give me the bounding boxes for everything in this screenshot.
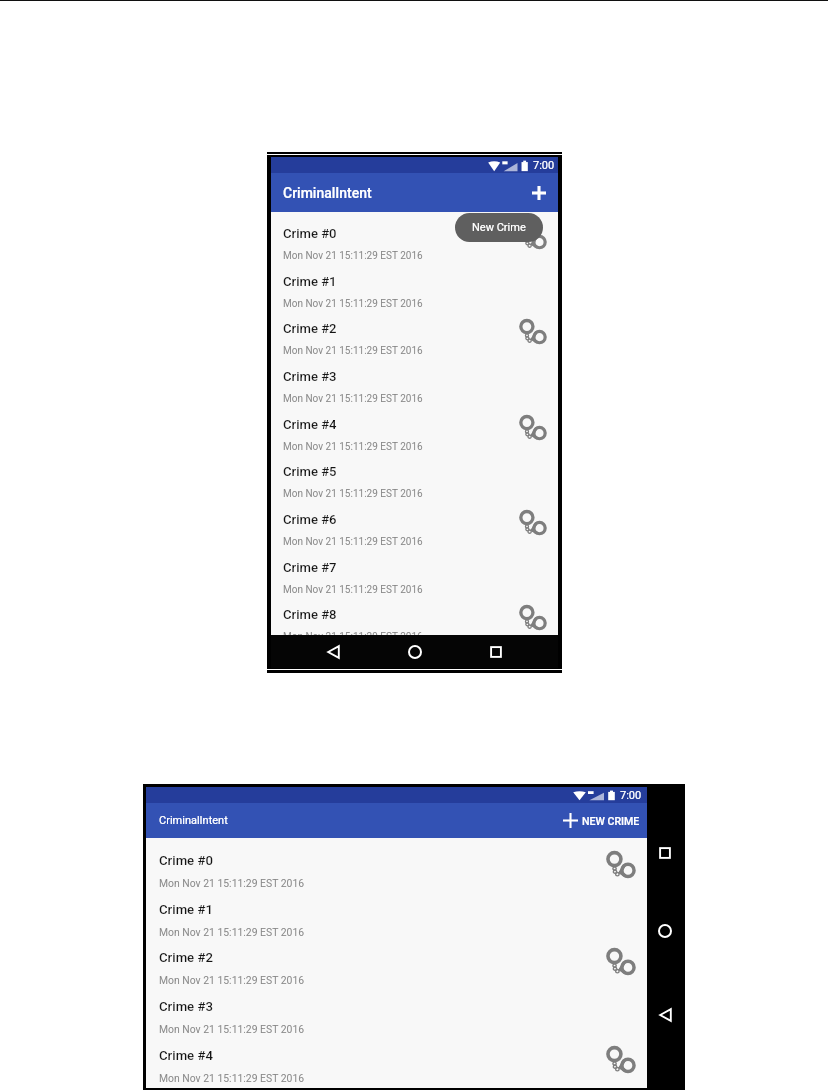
button[interactable]: Home xyxy=(652,918,678,944)
button[interactable]: Crime #2 xyxy=(146,950,648,992)
staticText: Mon Nov 21 15:11:29 EST 2016 xyxy=(159,926,305,938)
staticText: Crime #0 xyxy=(159,853,213,868)
staticText: Mon Nov 21 15:11:29 EST 2016 xyxy=(159,974,305,986)
staticText: Mon Nov 21 15:11:29 EST 2016 xyxy=(283,584,423,596)
staticText: Crime #3 xyxy=(159,999,213,1014)
button[interactable]: Crime #3 xyxy=(271,369,558,410)
staticText: CriminalIntent xyxy=(159,814,228,827)
button[interactable]: Crime #0 xyxy=(271,226,558,267)
button[interactable]: Crime #6 xyxy=(271,512,558,553)
button[interactable]: Crime #2 xyxy=(271,321,558,362)
staticText: Crime #5 xyxy=(283,464,337,479)
button[interactable]: Recent apps xyxy=(652,840,678,866)
button[interactable]: New Crime xyxy=(525,179,553,207)
button[interactable]: Crime #1 xyxy=(146,902,648,944)
button[interactable]: Crime #1 xyxy=(271,274,558,315)
staticText: 7:00 xyxy=(533,159,555,172)
button[interactable]: Back xyxy=(320,639,346,665)
button[interactable]: Crime #3 xyxy=(146,999,648,1041)
staticText: Crime #2 xyxy=(159,950,213,965)
staticText: Crime #0 xyxy=(283,226,337,241)
button[interactable]: Back xyxy=(652,1002,678,1028)
staticText: Crime #8 xyxy=(283,607,337,622)
staticText: Crime #2 xyxy=(283,321,337,336)
staticText: Mon Nov 21 15:11:29 EST 2016 xyxy=(159,877,305,889)
button[interactable]: Crime #4 xyxy=(271,417,558,458)
staticText: Mon Nov 21 15:11:29 EST 2016 xyxy=(159,1072,305,1084)
staticText: Crime #1 xyxy=(283,274,337,289)
staticText: Mon Nov 21 15:11:29 EST 2016 xyxy=(283,250,423,262)
staticText: CriminalIntent xyxy=(283,185,372,201)
staticText: Crime #7 xyxy=(283,560,337,575)
button[interactable]: Crime #8 xyxy=(271,607,558,648)
staticText: Crime #4 xyxy=(283,417,337,432)
button[interactable]: Recent apps xyxy=(483,639,509,665)
staticText: Crime #4 xyxy=(159,1048,213,1063)
staticText: Crime #6 xyxy=(283,512,337,527)
staticText: Crime #1 xyxy=(159,902,213,917)
button[interactable]: New Crime xyxy=(561,809,642,832)
staticText: Crime #3 xyxy=(283,369,337,384)
staticText: Mon Nov 21 15:11:29 EST 2016 xyxy=(283,441,423,453)
button[interactable]: Crime #5 xyxy=(271,464,558,505)
button[interactable]: Crime #7 xyxy=(271,560,558,601)
staticText: Mon Nov 21 15:11:29 EST 2016 xyxy=(283,488,423,500)
button[interactable]: Crime #0 xyxy=(146,853,648,895)
button[interactable]: Crime #4 xyxy=(146,1048,648,1090)
staticText: Mon Nov 21 15:11:29 EST 2016 xyxy=(159,1023,305,1035)
staticText: New Crime xyxy=(472,221,526,234)
staticText: Mon Nov 21 15:11:29 EST 2016 xyxy=(283,393,423,405)
staticText: Mon Nov 21 15:11:29 EST 2016 xyxy=(283,536,423,548)
staticText: 7:00 xyxy=(620,789,642,802)
staticText: Mon Nov 21 15:11:29 EST 2016 xyxy=(283,631,423,643)
button[interactable]: Home xyxy=(402,639,428,665)
staticText: NEW CRIME xyxy=(582,815,640,827)
staticText: Mon Nov 21 15:11:29 EST 2016 xyxy=(283,345,423,357)
staticText: Mon Nov 21 15:11:29 EST 2016 xyxy=(283,298,423,310)
